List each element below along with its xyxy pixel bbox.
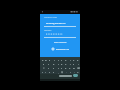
staticText: k [73, 63, 75, 66]
staticText: e [49, 59, 51, 62]
staticText: ← [77, 71, 79, 73]
button[interactable]: . [64, 70, 68, 74]
button[interactable]: Remember me [50, 47, 71, 51]
staticText: d [53, 63, 55, 66]
button[interactable]: ← [76, 70, 80, 74]
button[interactable]: d [51, 62, 56, 66]
staticText: Password [44, 29, 52, 31]
button[interactable]: a [41, 62, 46, 66]
button[interactable]: e [48, 58, 52, 62]
staticText: x [53, 67, 55, 70]
button[interactable]: w [44, 58, 48, 62]
button[interactable]: o [72, 58, 76, 62]
button[interactable]: ? [41, 70, 44, 74]
staticText: p [77, 59, 79, 62]
button[interactable]: 3 [52, 70, 56, 74]
button[interactable]: Space [59, 75, 72, 77]
staticText: ' [74, 71, 75, 74]
button[interactable]: v [60, 66, 64, 70]
staticText: ☺ [61, 71, 64, 73]
staticText: ! [70, 71, 71, 74]
staticText: Remember me [56, 48, 70, 51]
button[interactable]: g [60, 62, 64, 66]
staticText: v [61, 67, 63, 70]
button[interactable]: ☺ [60, 70, 64, 74]
staticText: n [69, 67, 71, 70]
button[interactable]: , [56, 70, 60, 74]
staticText: f [58, 63, 59, 66]
staticText: someone@example.com [46, 22, 66, 24]
staticText: a [43, 63, 45, 66]
staticText: y [61, 59, 63, 62]
staticText: ? [42, 71, 43, 74]
button[interactable]: s [46, 62, 51, 66]
staticText: j [70, 63, 71, 66]
staticText: ⇧ [43, 67, 45, 69]
button[interactable]: ⌫ [76, 66, 80, 70]
button[interactable]: y [60, 58, 64, 62]
button[interactable]: Forgot password? [53, 41, 68, 43]
staticText: o [73, 59, 75, 62]
staticText: t [58, 59, 59, 62]
staticText: 1 [45, 71, 47, 74]
staticText: s [48, 63, 49, 66]
button[interactable]: j [68, 62, 72, 66]
button[interactable]: c [56, 66, 60, 70]
staticText: z [48, 67, 49, 70]
staticText: u [65, 59, 67, 62]
button[interactable]: n [68, 66, 72, 70]
button[interactable]: Enter [73, 74, 78, 77]
button[interactable]: i [68, 58, 72, 62]
staticText: , [58, 71, 59, 74]
staticText: l [78, 63, 79, 66]
button[interactable]: z [46, 66, 51, 70]
staticText: 3 [53, 71, 55, 74]
button[interactable]: m [72, 66, 76, 70]
button[interactable]: x [51, 66, 56, 70]
button[interactable]: t [56, 58, 60, 62]
button[interactable]: b [64, 66, 68, 70]
button[interactable]: ⇧ [41, 66, 46, 70]
staticText: q [42, 59, 44, 62]
button[interactable]: r [52, 58, 56, 62]
button[interactable]: 1 [44, 70, 48, 74]
button[interactable]: u [64, 58, 68, 62]
button[interactable]: f [56, 62, 60, 66]
button[interactable]: k [72, 62, 76, 66]
staticText: c [58, 67, 59, 70]
staticText: Forgot password? [54, 41, 67, 43]
staticText: i [70, 59, 71, 62]
button[interactable]: 2 [48, 70, 52, 74]
staticText: w [45, 59, 47, 62]
staticText: g [61, 63, 63, 66]
staticText: Username or email [44, 16, 57, 18]
button[interactable]: h [64, 62, 68, 66]
staticText: b [65, 67, 67, 70]
staticText: m [73, 67, 75, 70]
staticText: r [54, 59, 55, 62]
staticText: ⌫ [77, 67, 80, 69]
button[interactable]: ! [68, 70, 72, 74]
button[interactable]: l [76, 62, 80, 66]
staticText: 2 [49, 71, 51, 74]
staticText: . [66, 71, 67, 74]
button[interactable]: p [76, 58, 80, 62]
button[interactable]: ' [72, 70, 76, 74]
button[interactable]: q [41, 58, 44, 62]
staticText: h [65, 63, 67, 66]
